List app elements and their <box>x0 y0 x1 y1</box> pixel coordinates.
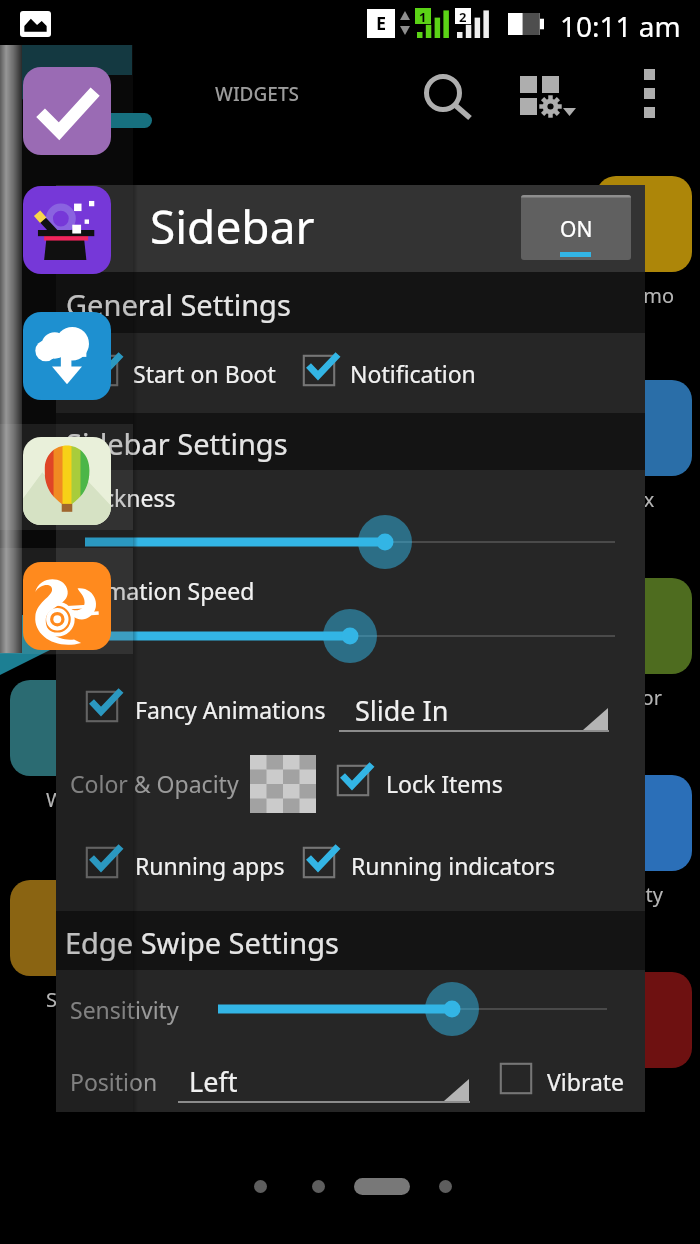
staticText: 2 <box>459 8 467 24</box>
button[interactable] <box>299 840 593 890</box>
staticText: rity <box>632 881 663 908</box>
button[interactable] <box>82 840 299 890</box>
button[interactable]: r <box>596 972 692 1068</box>
button[interactable]: More options <box>624 58 674 128</box>
button[interactable]: Magic wand <box>23 186 111 274</box>
button[interactable] <box>82 684 351 734</box>
button[interactable]: Slider <box>55 512 645 572</box>
button[interactable]: Slider <box>188 979 637 1039</box>
staticText: Vibrate <box>547 1066 625 1097</box>
button[interactable]: ON <box>521 195 631 260</box>
button[interactable]: ox <box>596 380 692 476</box>
staticText: emo <box>632 282 675 309</box>
staticText: Lock Items <box>386 768 503 799</box>
staticText: Fancy Animations <box>135 694 326 725</box>
other: Screenshot captured <box>20 11 51 37</box>
button[interactable]: sor <box>596 578 692 674</box>
staticText: Thickness <box>70 482 176 513</box>
staticText: WIDGETS <box>215 81 300 107</box>
staticText: S <box>46 986 57 1013</box>
button[interactable]: Cloud download <box>23 312 111 400</box>
button[interactable] <box>299 348 514 398</box>
button[interactable]: Balloon <box>23 437 111 525</box>
button[interactable]: Search <box>414 58 484 128</box>
staticText: sor <box>632 684 662 711</box>
button[interactable]: Tasks <box>23 67 111 155</box>
staticText: Color & Opacity <box>70 768 239 799</box>
button[interactable] <box>82 348 310 398</box>
staticText: Animation Speed <box>70 575 255 606</box>
staticText: Running apps <box>135 850 285 881</box>
button[interactable] <box>333 758 524 808</box>
staticText: 10:11 am <box>560 7 681 45</box>
staticText: W <box>46 786 65 813</box>
button[interactable]: emo <box>596 176 692 272</box>
staticText: Notification <box>350 358 476 389</box>
staticText: E <box>376 11 387 36</box>
staticText: Edge Swipe Settings <box>65 923 339 962</box>
button[interactable]: Manage apps <box>512 64 592 126</box>
staticText: Left <box>189 1063 238 1100</box>
staticText: General Settings <box>66 285 291 324</box>
staticText: 1 <box>419 8 427 24</box>
staticText: Position <box>70 1066 158 1097</box>
staticText: Start on Boot <box>133 358 276 389</box>
button[interactable]: Slide In <box>339 683 609 739</box>
staticText: Slide In <box>355 692 449 729</box>
button[interactable]: Left <box>178 1054 470 1110</box>
button[interactable]: Slider <box>55 606 645 666</box>
staticText: ON <box>560 215 593 244</box>
staticText: Sidebar <box>150 195 315 258</box>
button[interactable]: Pick colour and opacity <box>250 755 316 813</box>
staticText: Sensitivity <box>70 994 179 1025</box>
staticText: Sidebar Settings <box>66 424 288 463</box>
button[interactable]: rity <box>596 775 692 871</box>
staticText: Running indicators <box>351 850 556 881</box>
button[interactable] <box>496 1056 646 1106</box>
staticText: ox <box>632 486 655 513</box>
button[interactable]: Browser <box>23 562 111 650</box>
